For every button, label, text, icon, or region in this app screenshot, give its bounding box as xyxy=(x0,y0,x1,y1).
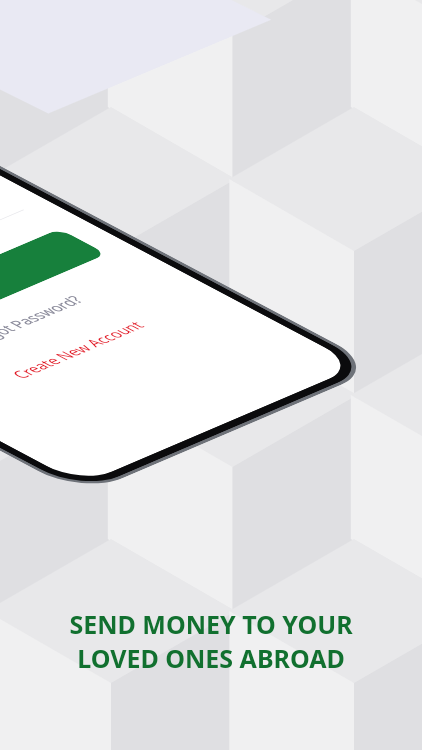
staticText: Forgot Password? xyxy=(0,277,90,365)
staticText: Login xyxy=(0,267,6,314)
staticText: SEND MONEY TO YOUR xyxy=(69,607,353,641)
staticText: LOVED ONES ABROAD xyxy=(77,641,345,675)
staticText: Create New Account xyxy=(5,300,151,399)
